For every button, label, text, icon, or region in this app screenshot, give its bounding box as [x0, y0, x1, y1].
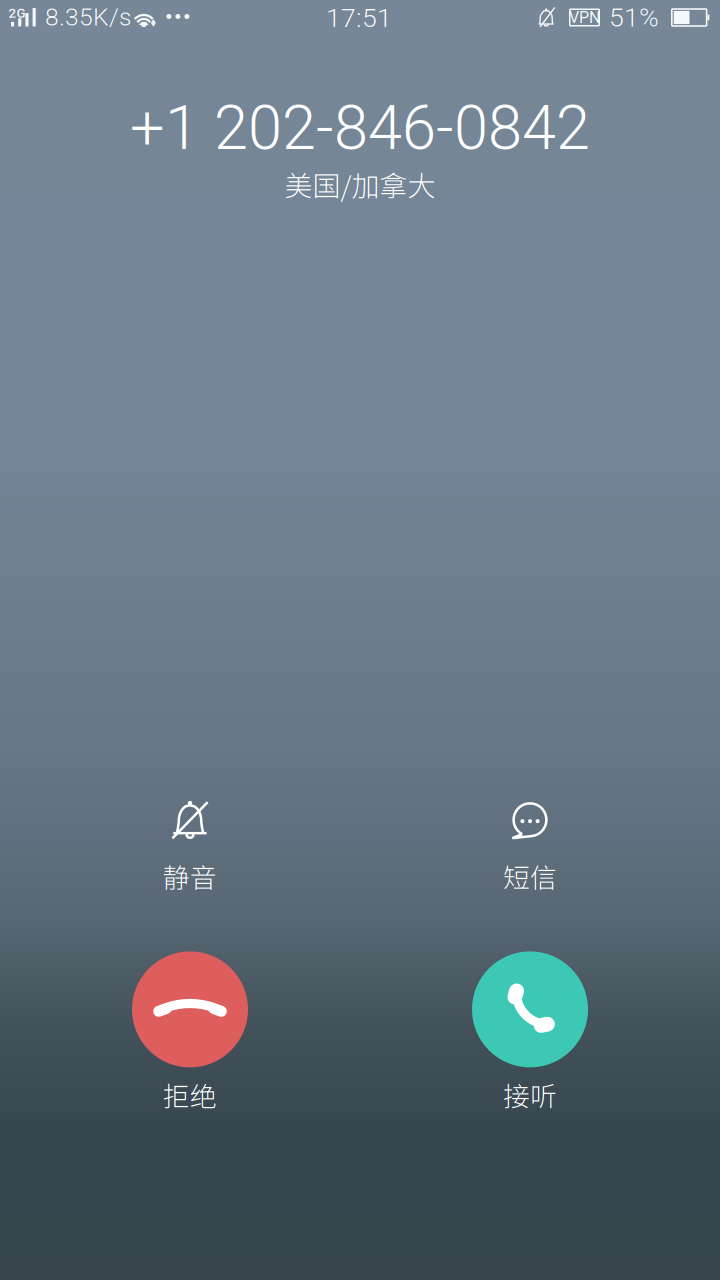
staticText: 拒绝: [163, 1075, 217, 1114]
staticText: 静音: [163, 857, 217, 895]
staticText: 8.35K/s: [45, 2, 132, 31]
button[interactable]: 接听: [440, 951, 620, 1114]
staticText: 51%: [609, 2, 659, 33]
staticText: 接听: [503, 1075, 557, 1114]
button[interactable]: 短信: [440, 801, 620, 895]
staticText: 17:51: [326, 2, 392, 34]
staticText: +1 202-846-0842: [130, 92, 590, 164]
staticText: 短信: [503, 857, 557, 895]
button[interactable]: 拒绝: [100, 951, 280, 1114]
staticText: 美国/加拿大: [284, 164, 435, 204]
button[interactable]: 静音: [100, 801, 280, 895]
staticText: 2G: [8, 5, 25, 21]
staticText: VPN: [569, 8, 600, 27]
